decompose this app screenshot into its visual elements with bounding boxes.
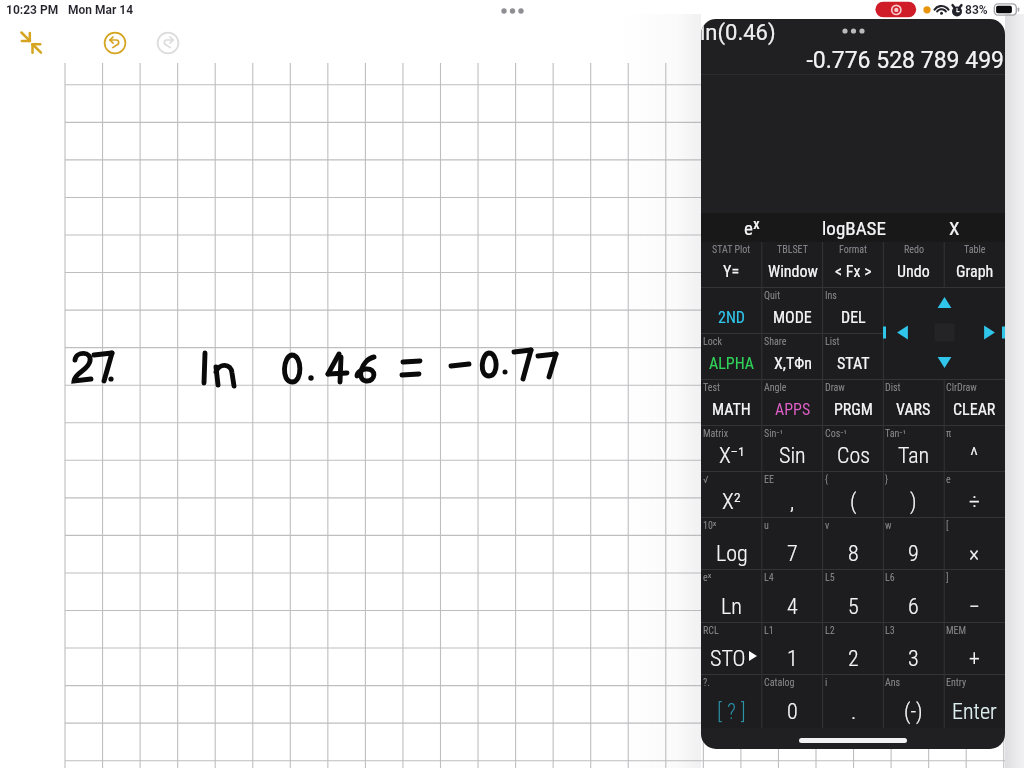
staticText: Sin⁻¹ xyxy=(764,428,783,440)
button[interactable]: 2ND xyxy=(701,288,762,334)
button[interactable]: MEM xyxy=(944,623,1005,675)
button[interactable]: Entry xyxy=(944,675,1005,728)
staticText: X,TΦn xyxy=(774,354,812,373)
staticText: Sin xyxy=(779,443,806,469)
button[interactable]: Dist xyxy=(883,380,944,426)
staticText: Ins xyxy=(825,290,837,302)
button[interactable]: Lock xyxy=(701,334,762,380)
staticText: 10:23 PM xyxy=(6,3,59,17)
button[interactable]: STAT Plot xyxy=(701,242,762,288)
staticText: Quit xyxy=(764,290,781,302)
staticText: Ans xyxy=(885,677,901,689)
button[interactable]: eˣ xyxy=(701,570,762,623)
button[interactable]: [ xyxy=(944,518,1005,570)
button[interactable]: Ans xyxy=(883,675,944,728)
button[interactable]: u xyxy=(762,518,823,570)
staticText: Log xyxy=(716,541,748,567)
staticText: 9 xyxy=(908,541,919,567)
staticText: w xyxy=(885,520,892,532)
button[interactable]: Ins xyxy=(823,288,884,334)
staticText: 3 xyxy=(908,646,919,672)
button[interactable]: L3 xyxy=(883,623,944,675)
button[interactable]: L6 xyxy=(883,570,944,623)
button[interactable]: Multitasking controls xyxy=(500,5,526,17)
button[interactable]: TBLSET xyxy=(762,242,823,288)
button[interactable]: X xyxy=(904,213,1005,242)
button[interactable]: Angle xyxy=(762,380,823,426)
button[interactable]: ?. xyxy=(701,675,762,728)
button[interactable]: w xyxy=(883,518,944,570)
staticText: 4 xyxy=(787,594,798,620)
button[interactable]: More options xyxy=(842,24,868,38)
staticText: DEL xyxy=(841,308,866,327)
staticText: TBLSET xyxy=(777,244,808,256)
staticText: Window xyxy=(768,262,818,281)
button[interactable]: Share xyxy=(762,334,823,380)
staticText: X xyxy=(949,217,960,239)
button[interactable]: L5 xyxy=(823,570,884,623)
staticText: Undo xyxy=(897,262,930,281)
staticText: Angle xyxy=(764,382,787,394)
staticText: CLEAR xyxy=(953,400,996,419)
staticText: Graph xyxy=(956,262,994,281)
button[interactable]: { xyxy=(823,472,884,518)
staticText: Cos⁻¹ xyxy=(825,428,847,440)
staticText: -0.776 528 789 499 xyxy=(701,47,1004,74)
staticText: − xyxy=(969,594,980,620)
staticText: Entry xyxy=(946,677,967,689)
staticText: Tan⁻¹ xyxy=(885,428,906,440)
staticText: Test xyxy=(703,382,720,394)
button[interactable]: √ xyxy=(701,472,762,518)
staticText: L4 xyxy=(764,572,774,584)
button[interactable]: eˣ xyxy=(701,213,803,242)
staticText: } xyxy=(885,474,889,486)
staticText: logBASE xyxy=(822,217,886,239)
button[interactable]: e xyxy=(944,472,1005,518)
button[interactable]: π xyxy=(944,426,1005,472)
button[interactable]: Collapse xyxy=(17,28,47,58)
staticText: MODE xyxy=(773,308,812,327)
staticText: e xyxy=(946,474,951,486)
button[interactable]: RCL xyxy=(701,623,762,675)
staticText: ÷ xyxy=(969,489,980,515)
button[interactable]: List xyxy=(823,334,884,380)
staticText: { xyxy=(825,474,829,486)
button[interactable]: L4 xyxy=(762,570,823,623)
button[interactable]: v xyxy=(823,518,884,570)
staticText: List xyxy=(825,336,840,348)
button[interactable]: Draw xyxy=(823,380,884,426)
button[interactable]: L2 xyxy=(823,623,884,675)
button[interactable]: EE xyxy=(762,472,823,518)
button[interactable]: 10ˣ xyxy=(701,518,762,570)
staticText: EE xyxy=(764,474,774,486)
button[interactable]: Direction pad xyxy=(883,288,1005,380)
staticText: L5 xyxy=(825,572,835,584)
button[interactable]: Catalog xyxy=(762,675,823,728)
button[interactable]: L1 xyxy=(762,623,823,675)
button[interactable]: Format xyxy=(823,242,884,288)
staticText: Draw xyxy=(825,382,845,394)
staticText: 83% xyxy=(965,3,988,17)
staticText: ( xyxy=(850,489,857,515)
button[interactable]: } xyxy=(883,472,944,518)
button[interactable]: logBASE xyxy=(803,213,904,242)
staticText: APPS xyxy=(775,400,811,419)
button[interactable]: Redo xyxy=(883,242,944,288)
button[interactable]: Table xyxy=(944,242,1005,288)
button[interactable]: ] xyxy=(944,570,1005,623)
staticText: 8 xyxy=(848,541,859,567)
button[interactable]: Test xyxy=(701,380,762,426)
button[interactable]: Sin⁻¹ xyxy=(762,426,823,472)
button[interactable]: Redo xyxy=(156,31,180,55)
button[interactable]: ClrDraw xyxy=(944,380,1005,426)
button[interactable]: Quit xyxy=(762,288,823,334)
button[interactable]: Cos⁻¹ xyxy=(823,426,884,472)
staticText: u xyxy=(764,520,769,532)
staticText: Cos xyxy=(837,443,871,469)
staticText: √ xyxy=(703,474,709,486)
button[interactable]: Undo xyxy=(103,31,127,55)
staticText: 7 xyxy=(787,541,798,567)
button[interactable]: i xyxy=(823,675,884,728)
button[interactable]: Matrix xyxy=(701,426,762,472)
button[interactable]: Tan⁻¹ xyxy=(883,426,944,472)
